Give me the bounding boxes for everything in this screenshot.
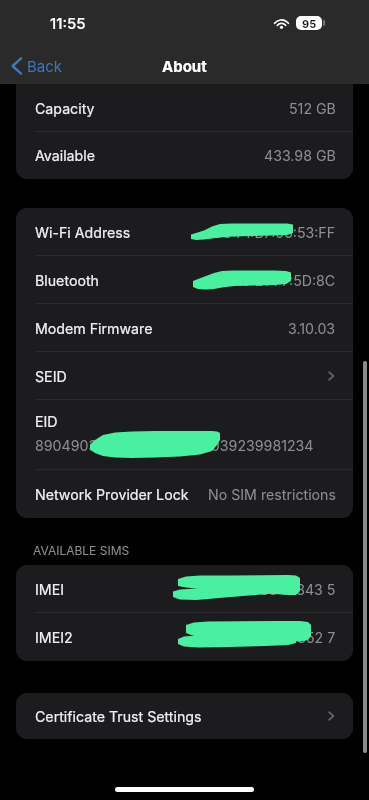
staticText: 512 GB [289, 100, 336, 117]
button[interactable]: Bluetooth [16, 256, 353, 304]
staticText: No SIM restrictions [208, 486, 336, 503]
button[interactable]: Certificate Trust Settings [16, 693, 353, 739]
staticText: Network Provider Lock [35, 486, 189, 503]
staticText: Bluetooth [35, 272, 99, 289]
staticText: Wi-Fi Address [35, 224, 131, 241]
staticText: 8C:F1:B7:95:53:FF [213, 224, 336, 241]
staticText: Certificate Trust Settings [35, 708, 202, 725]
staticText: 35 938841 352 7 [222, 629, 336, 646]
button[interactable]: Back [10, 57, 63, 75]
button[interactable]: IMEI [16, 565, 353, 613]
staticText: 35 938841 343 5 [221, 581, 336, 598]
staticText: 89049032007008882600039239981234 [35, 437, 314, 454]
staticText: Back [27, 57, 63, 75]
staticText: Capacity [35, 100, 95, 117]
button[interactable]: Wi-Fi Address [16, 208, 353, 256]
staticText: 433.98 GB [264, 147, 336, 164]
staticText: About [162, 57, 207, 75]
staticText: 3.10.03 [288, 320, 336, 337]
staticText: EID [35, 413, 58, 430]
staticText: Modem Firmware [35, 320, 153, 337]
button[interactable]: Modem Firmware [16, 304, 353, 352]
staticText: Available [35, 147, 95, 164]
staticText: 95 [302, 17, 317, 30]
staticText: SEID [35, 368, 67, 385]
button[interactable]: SEID [16, 352, 353, 400]
button[interactable]: Network Provider Lock [16, 470, 353, 518]
staticText: A6:21:77:5D:8C [232, 272, 336, 289]
button[interactable]: EID [16, 400, 353, 470]
staticText: IMEI2 [35, 629, 73, 646]
button[interactable]: Capacity [16, 84, 353, 132]
staticText: 11:55 [50, 14, 86, 32]
staticText: IMEI [35, 581, 64, 598]
button[interactable]: IMEI2 [16, 613, 353, 661]
staticText: AVAILABLE SIMS [33, 543, 130, 558]
button[interactable]: Available [16, 132, 353, 179]
